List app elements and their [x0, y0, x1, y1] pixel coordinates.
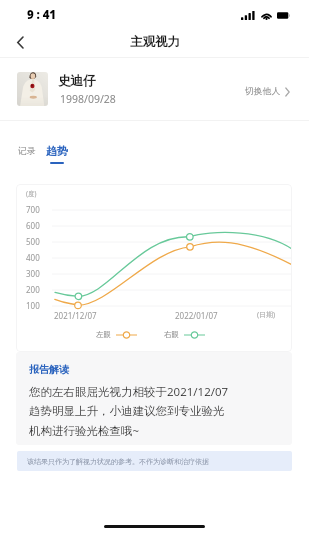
staticText: 您的左右眼屈光视力相较于2021/12/07趋势明显上升，小迪建议您到专业验光机…	[29, 384, 234, 438]
staticText: 史迪仔	[58, 73, 96, 89]
staticText: 9 : 41	[27, 7, 56, 23]
staticText: 报告解读	[29, 363, 69, 376]
staticText: 300	[26, 268, 40, 279]
staticText: 该结果只作为了解视力状况的参考。不作为诊断和治疗依据	[27, 457, 209, 466]
staticText: 右眼	[164, 330, 179, 339]
staticText: 2022/01/07	[175, 310, 218, 321]
staticText: 切换他人	[245, 86, 281, 97]
button[interactable]: Back	[4, 28, 36, 57]
staticText: 600	[26, 220, 40, 231]
button[interactable]: 趋势	[41, 141, 73, 167]
staticText: 200	[26, 284, 40, 295]
staticText: 500	[26, 236, 40, 247]
staticText: 主观视力	[130, 34, 180, 50]
staticText: 左眼	[96, 330, 111, 339]
staticText: (度)	[26, 189, 37, 198]
staticText: 400	[26, 252, 40, 263]
staticText: 700	[26, 204, 40, 215]
staticText: 1998/09/28	[60, 92, 116, 106]
button[interactable]: 记录	[12, 143, 42, 160]
staticText: (日期)	[257, 310, 276, 320]
staticText: 趋势	[46, 144, 68, 158]
staticText: 2021/12/07	[54, 310, 97, 321]
button[interactable]: 切换他人	[245, 86, 290, 97]
staticText: 记录	[18, 146, 36, 157]
staticText: 100	[26, 300, 40, 311]
